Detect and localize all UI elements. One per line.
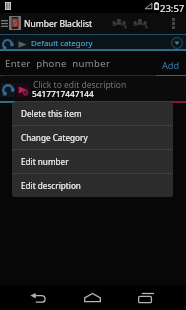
staticText: Enter phone number — [5, 57, 111, 70]
staticText: Change Category — [21, 132, 88, 143]
button[interactable]: Groups — [108, 13, 130, 34]
staticText: Click to edit description — [33, 79, 127, 91]
button[interactable]: More options — [164, 13, 182, 34]
button[interactable]: Recent apps — [130, 285, 162, 310]
button[interactable]: Back — [22, 285, 54, 310]
staticText: Default category — [31, 38, 93, 49]
staticText: 23:57 — [160, 2, 185, 15]
button[interactable]: Change Category — [12, 126, 173, 149]
staticText: Edit number — [21, 156, 69, 167]
button[interactable]: Edit number — [12, 150, 173, 173]
button[interactable]: Home — [76, 285, 108, 310]
button[interactable]: Contacts — [129, 13, 151, 34]
button[interactable]: Navigation menu — [0, 13, 9, 34]
button[interactable]: Add — [159, 57, 183, 74]
button[interactable]: Click to edit description — [0, 76, 186, 102]
staticText: Number Blacklist — [24, 18, 93, 30]
staticText: Delete this item — [21, 108, 82, 119]
staticText: 5417717447144 — [32, 88, 94, 99]
staticText: Add — [162, 59, 180, 72]
button[interactable]: Edit description — [12, 174, 173, 197]
button[interactable]: Select category — [171, 37, 183, 49]
button[interactable]: Default category — [0, 34, 186, 51]
staticText: Edit description — [21, 180, 81, 191]
button[interactable]: Enter phone number — [5, 57, 111, 70]
button[interactable]: Delete this item — [12, 102, 173, 125]
